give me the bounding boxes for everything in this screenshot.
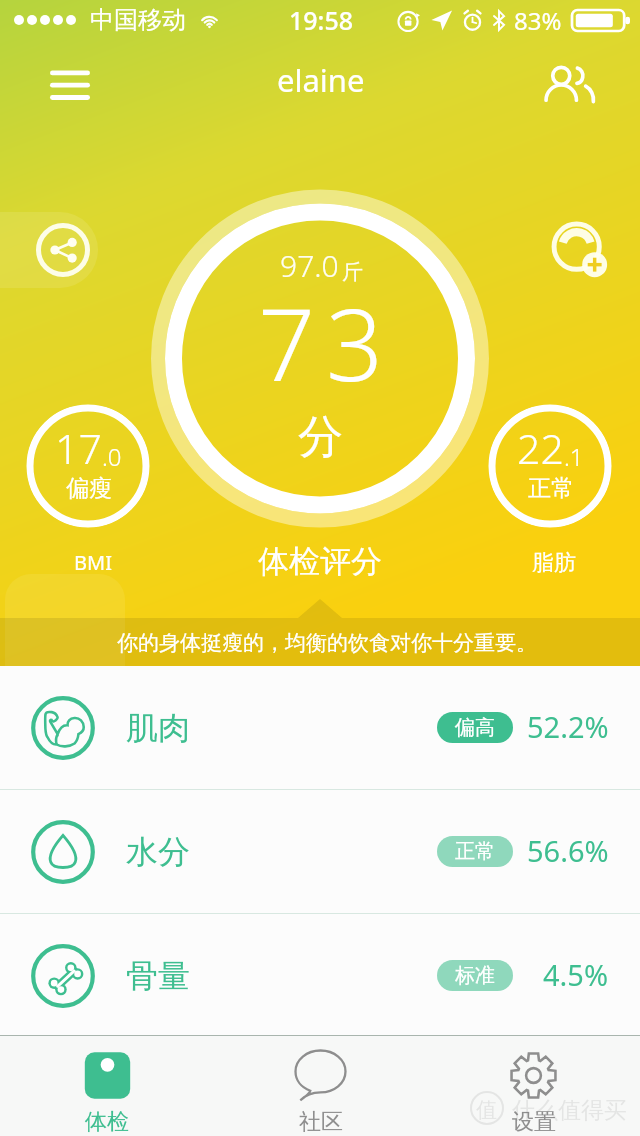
staticText: 83% (514, 4, 562, 37)
button[interactable]: 体检 (0, 1036, 214, 1136)
staticText: elaine (277, 59, 365, 101)
staticText: 偏高 (455, 715, 495, 740)
button[interactable]: Friends (535, 60, 599, 116)
staticText: 斤 (342, 259, 363, 285)
staticText: 设置 (512, 1108, 556, 1136)
button[interactable]: 骨量 (0, 914, 640, 1037)
staticText: 正常 (528, 474, 574, 503)
staticText: 97.0 (280, 245, 339, 286)
button[interactable]: 肌肉 (0, 666, 640, 789)
staticText: 骨量 (126, 956, 190, 996)
staticText: .1 (564, 440, 584, 473)
staticText: 分 (298, 409, 343, 466)
staticText: 值 (476, 1097, 497, 1123)
staticText: 56.6% (527, 831, 609, 870)
staticText: BMI (74, 549, 112, 576)
staticText: 中国移动 (90, 5, 186, 35)
button[interactable]: Add measurement (550, 220, 608, 278)
staticText: 社区 (299, 1108, 343, 1136)
staticText: 正常 (455, 839, 495, 864)
staticText: 73 (258, 274, 395, 410)
staticText: 4.5% (543, 955, 609, 994)
button[interactable]: 17 (26, 404, 150, 528)
staticText: 你的身体挺瘦的，均衡的饮食对你十分重要。 (117, 630, 537, 656)
staticText: 脂肪 (532, 549, 576, 577)
staticText: 什么值得买 (512, 1096, 627, 1125)
staticText: 肌肉 (126, 708, 190, 748)
button[interactable]: 设置 (427, 1036, 640, 1136)
staticText: .0 (102, 440, 122, 473)
staticText: 17 (55, 420, 102, 476)
staticText: 标准 (455, 963, 495, 988)
button[interactable]: Menu (36, 54, 104, 114)
staticText: 体检 (85, 1108, 129, 1136)
staticText: 19:58 (289, 3, 354, 37)
button[interactable]: 22 (488, 404, 612, 528)
staticText: 偏瘦 (66, 474, 112, 503)
staticText: 22 (517, 420, 564, 476)
button[interactable]: 水分 (0, 790, 640, 913)
staticText: 52.2% (527, 707, 609, 746)
staticText: 水分 (126, 832, 190, 872)
button[interactable]: 社区 (214, 1036, 427, 1136)
staticText: 体检评分 (258, 542, 382, 581)
button[interactable]: Share (36, 223, 90, 277)
